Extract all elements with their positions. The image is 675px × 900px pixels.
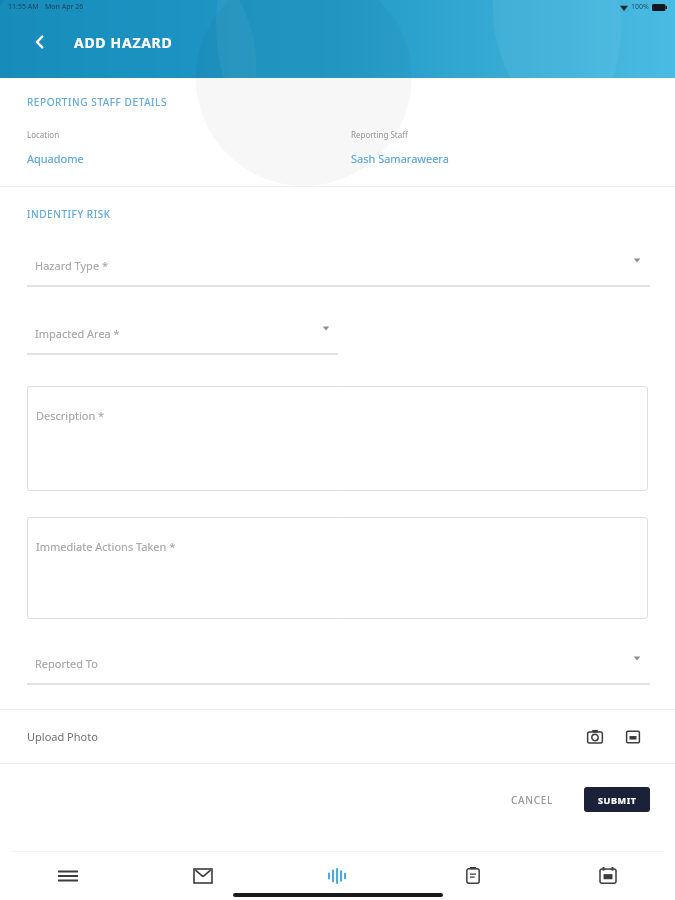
staticText: Immediate Actions Taken * [36, 539, 176, 554]
staticText: Sash Samaraweera [351, 151, 449, 166]
button[interactable]: Hazards [270, 851, 405, 900]
button[interactable]: Messages [135, 851, 270, 900]
staticText: SUBMIT [598, 794, 637, 806]
staticText: Description * [36, 408, 105, 423]
staticText: Reported To [35, 656, 98, 671]
button[interactable]: Menu [0, 851, 135, 900]
button[interactable]: Immediate Actions Taken * [27, 517, 648, 619]
button[interactable]: Back [22, 24, 58, 60]
staticText: Aquadome [27, 151, 84, 166]
button[interactable]: Description * [27, 386, 648, 491]
staticText: 100% [631, 2, 649, 12]
staticText: Reporting Staff [351, 129, 408, 140]
staticText: Impacted Area * [35, 326, 120, 341]
button[interactable]: CANCEL [499, 785, 566, 815]
staticText: INDENTIFY RISK [27, 207, 111, 221]
staticText: REPORTING STAFF DETAILS [27, 95, 168, 109]
button[interactable]: Tasks [405, 851, 540, 900]
button[interactable]: Take photo [580, 722, 610, 752]
button[interactable]: Reported To [0, 640, 675, 686]
staticText: ADD HAZARD [74, 33, 173, 52]
staticText: CANCEL [511, 793, 554, 807]
staticText: Hazard Type * [35, 258, 109, 273]
staticText: Mon Apr 26 [45, 2, 84, 12]
button[interactable]: SUBMIT [584, 787, 650, 812]
staticText: Upload Photo [27, 729, 98, 744]
staticText: 11:55 AM [8, 2, 39, 12]
button[interactable]: Impacted Area * [0, 310, 675, 356]
staticText: Location [27, 129, 60, 140]
button[interactable]: Choose from gallery [618, 722, 648, 752]
button[interactable]: Calendar [540, 851, 675, 900]
button[interactable]: Hazard Type * [0, 242, 675, 288]
